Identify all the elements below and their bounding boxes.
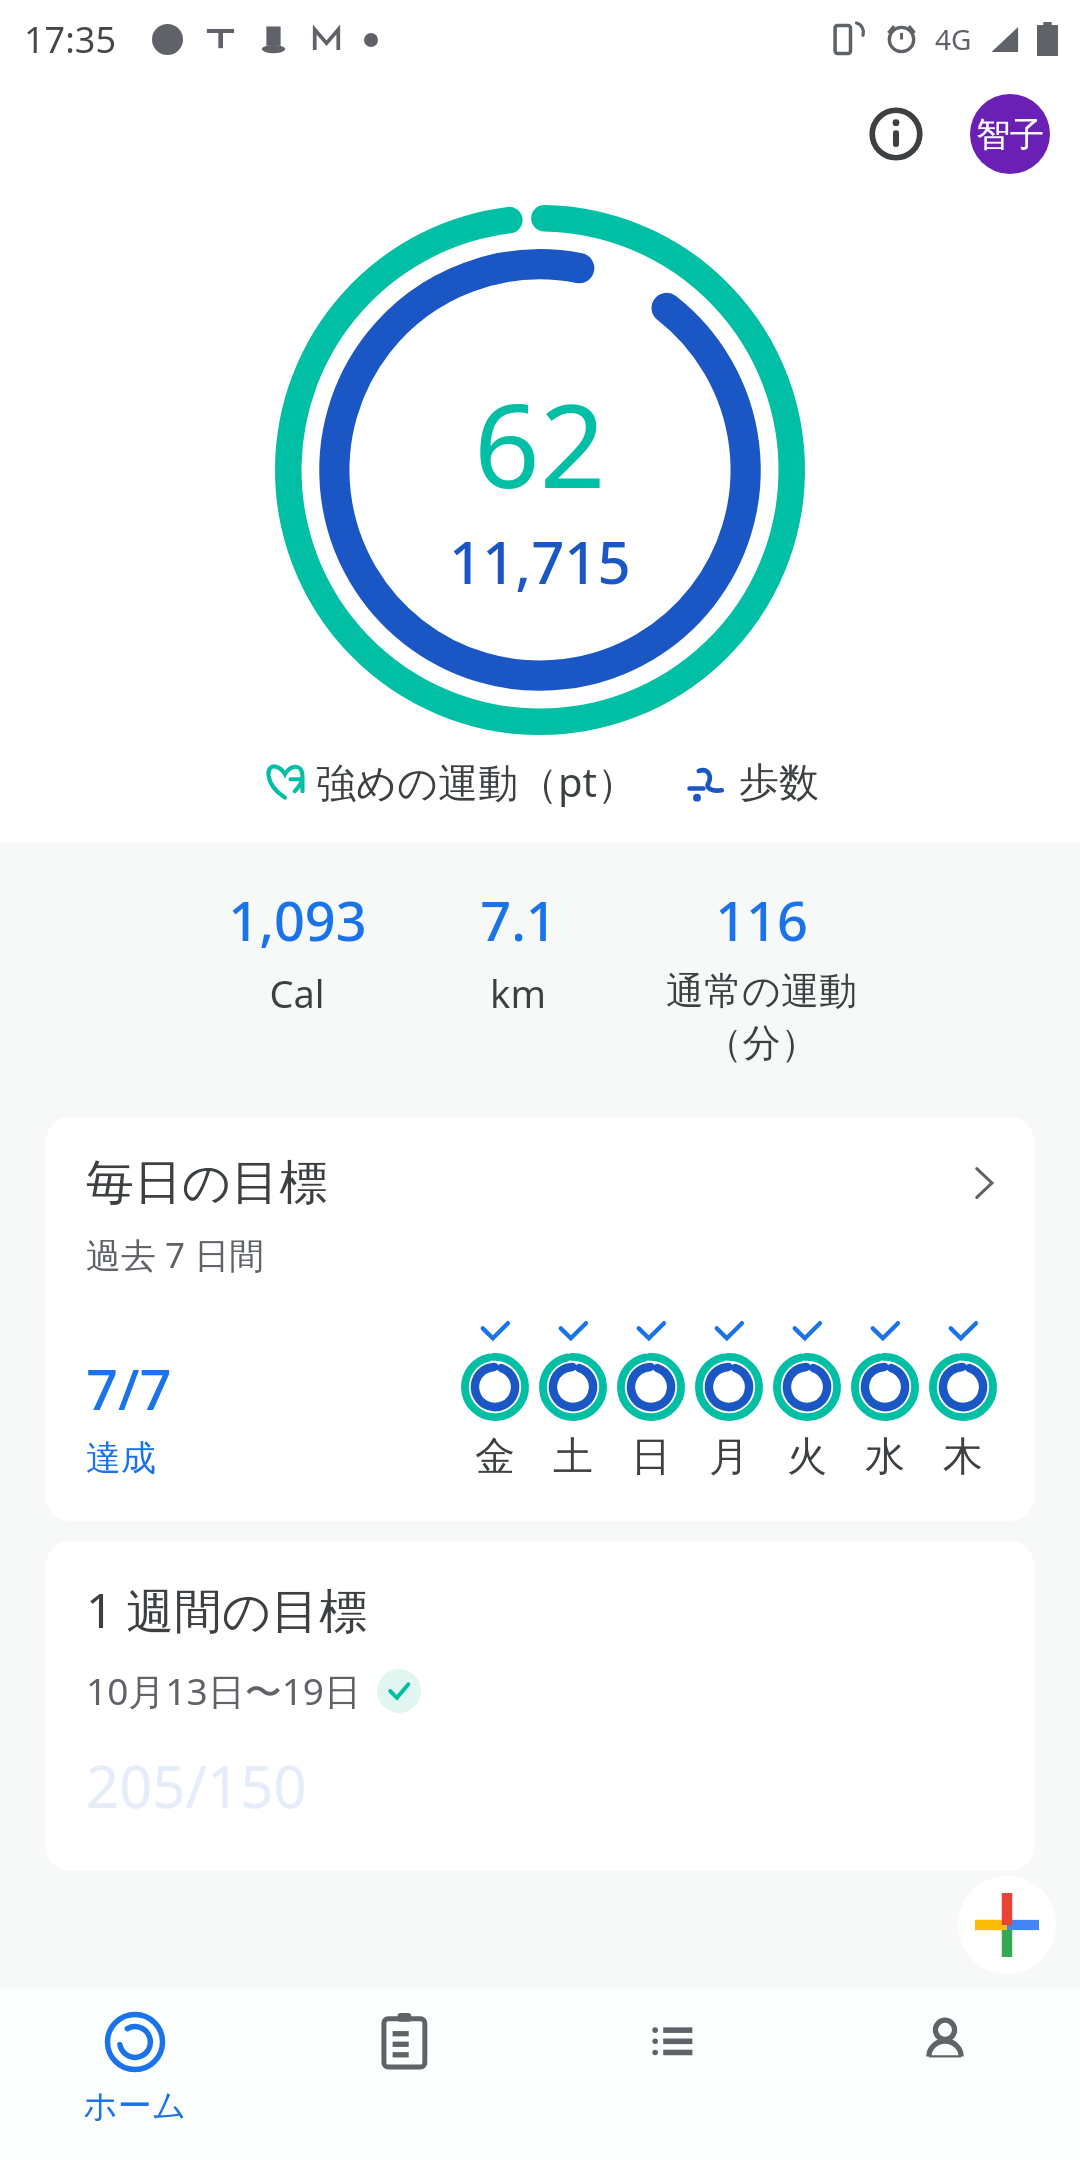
staticText: 木	[943, 1431, 983, 1481]
button[interactable]: ホーム	[0, 1988, 270, 2160]
staticText: 7/7	[86, 1350, 172, 1426]
staticText: 月	[709, 1431, 749, 1481]
button[interactable]: 日誌	[270, 1988, 540, 2160]
staticText: Cal	[269, 967, 325, 1019]
staticText: 116	[715, 883, 808, 957]
staticText: 62	[474, 365, 606, 522]
staticText: 智子	[976, 113, 1044, 156]
button[interactable]: 情報	[856, 94, 936, 174]
button[interactable]: 116	[611, 883, 911, 1067]
staticText: 水	[865, 1431, 905, 1481]
staticText: 11,715	[449, 522, 631, 601]
staticText: 17:35	[24, 15, 117, 64]
staticText: 1,093	[228, 883, 367, 957]
staticText: 通常の運動 （分）	[666, 967, 857, 1067]
staticText: 火	[787, 1431, 827, 1481]
staticText: 強めの運動（pt）	[316, 754, 637, 809]
staticText: 金	[475, 1431, 515, 1481]
staticText: 過去 7 日間	[86, 1231, 265, 1279]
staticText: 7.1	[480, 883, 557, 957]
button[interactable]: 1,093	[169, 883, 425, 1019]
staticText: 10月13日〜19日	[86, 1665, 361, 1716]
other: リスト	[644, 2010, 706, 2072]
button[interactable]: 歩数	[681, 753, 823, 811]
staticText: 毎日の目標	[86, 1153, 328, 1213]
staticText: km	[490, 967, 546, 1019]
other: プロフィール	[914, 2010, 976, 2072]
button[interactable]: 1 週間の目標	[46, 1541, 1034, 1871]
staticText: 205/150	[86, 1746, 307, 1825]
button[interactable]: プロフィール	[810, 1988, 1080, 2160]
staticText: 日	[631, 1431, 671, 1481]
button[interactable]: 追加	[958, 1876, 1056, 1974]
staticText: 1 週間の目標	[86, 1577, 368, 1643]
button[interactable]: 強めの運動（pt）	[258, 750, 641, 813]
staticText: 土	[553, 1431, 593, 1481]
staticText: 4G	[935, 20, 972, 58]
staticText: 歩数	[739, 757, 819, 807]
button[interactable]: 毎日の目標	[46, 1117, 1034, 1521]
button[interactable]: リスト	[540, 1988, 810, 2160]
button[interactable]: 智子	[970, 94, 1050, 174]
other: ホーム	[103, 2010, 167, 2074]
other: 日誌	[374, 2010, 436, 2072]
staticText: 達成	[86, 1436, 156, 1480]
staticText: ホーム	[83, 2084, 187, 2127]
button[interactable]: 7.1	[425, 883, 611, 1019]
